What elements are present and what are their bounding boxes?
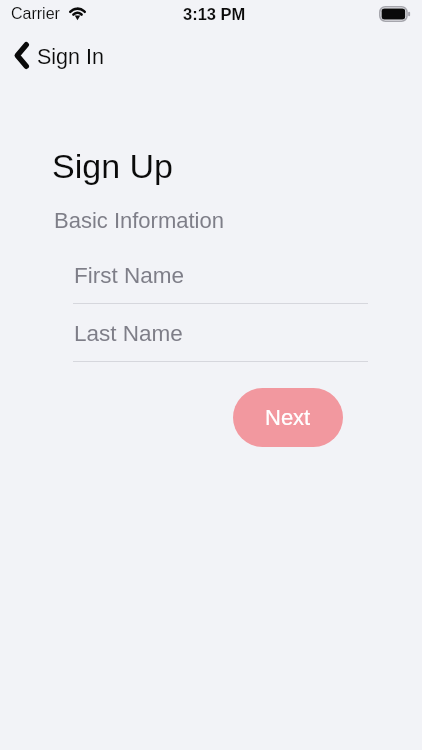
staticText: Last Name	[74, 321, 183, 346]
staticText: Sign In	[37, 45, 104, 69]
button[interactable]: Last Name	[73, 313, 368, 362]
other: Back	[14, 42, 29, 69]
button[interactable]: First Name	[73, 255, 368, 304]
staticText: Sign Up	[52, 147, 173, 185]
button[interactable]: Back	[2, 36, 112, 74]
staticText: First Name	[74, 263, 185, 288]
staticText: Basic Information	[54, 208, 224, 233]
staticText: Carrier	[11, 5, 60, 23]
staticText: Next	[265, 405, 311, 430]
staticText: 3:13 PM	[183, 5, 246, 23]
other: Wi-Fi	[67, 4, 88, 20]
other: Battery full	[379, 6, 411, 22]
button[interactable]: Next	[233, 388, 343, 447]
